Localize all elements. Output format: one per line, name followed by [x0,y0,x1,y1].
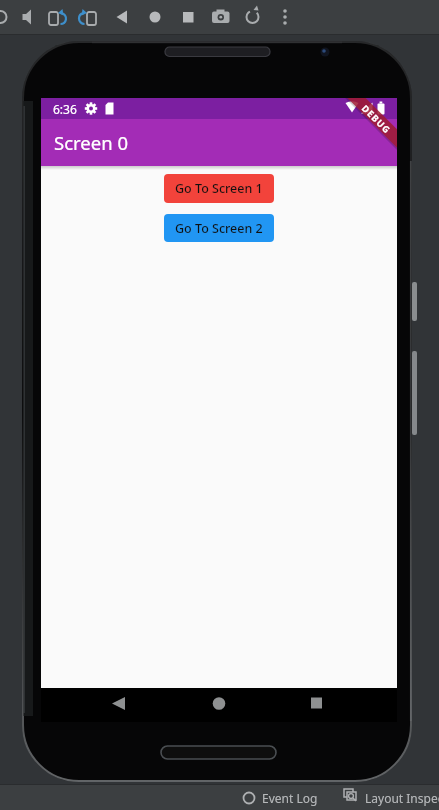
staticText: 6:36 [53,101,77,117]
button[interactable] [224,0,254,35]
button[interactable] [14,0,44,35]
button[interactable] [44,0,74,35]
staticText: Go To Screen 1 [175,180,263,197]
button[interactable] [134,0,164,35]
button[interactable]: Layout Inspec [340,784,439,810]
button[interactable] [301,688,331,722]
button[interactable] [204,688,234,722]
button[interactable] [104,0,134,35]
button[interactable] [194,0,224,35]
button[interactable] [254,0,284,35]
button[interactable]: Event Log [240,784,320,810]
button[interactable] [74,0,104,35]
staticText: Event Log [262,790,318,806]
button[interactable] [104,688,134,722]
button[interactable]: Go To Screen 1 [164,174,274,203]
staticText: DEBUG [360,102,394,136]
staticText: Screen 0 [54,130,129,155]
button[interactable]: Go To Screen 2 [164,214,274,242]
staticText: Go To Screen 2 [175,220,263,237]
button[interactable] [164,0,194,35]
staticText: Layout Inspec [365,790,439,806]
